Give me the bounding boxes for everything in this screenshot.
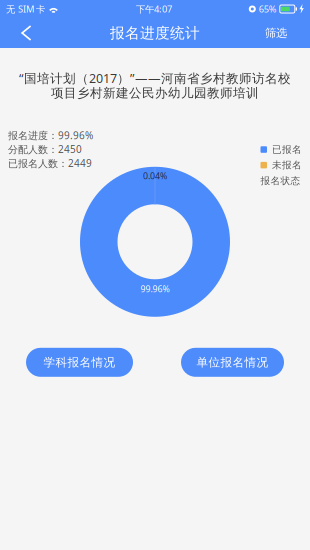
staticText: 报名进度统计	[110, 24, 200, 42]
staticText: 分配人数：2450	[8, 142, 82, 156]
button[interactable]: 单位报名情况	[181, 348, 284, 377]
staticText: 筛选	[265, 26, 287, 40]
button[interactable]: 返回	[8, 18, 44, 48]
staticText: 学科报名情况	[43, 355, 115, 370]
staticText: 65%	[259, 3, 277, 15]
staticText: 0.04%	[143, 170, 167, 182]
staticText: 报名进度：99.96%	[8, 128, 93, 142]
staticText: 无 SIM 卡	[6, 3, 45, 15]
staticText: 未报名	[272, 159, 302, 171]
staticText: 下午4:07	[136, 3, 172, 15]
staticText: 报名状态	[260, 175, 300, 187]
staticText: 已报名	[272, 143, 302, 156]
staticText: 99.96%	[140, 283, 169, 295]
staticText: 单位报名情况	[196, 355, 268, 370]
button[interactable]: 筛选	[260, 18, 292, 48]
button[interactable]: 学科报名情况	[26, 348, 133, 377]
staticText: 项目乡村新建公民办幼儿园教师培训	[51, 85, 259, 101]
staticText: “国培计划（2017）”——河南省乡村教师访名校	[19, 69, 291, 87]
staticText: 已报名人数：2449	[8, 156, 92, 170]
